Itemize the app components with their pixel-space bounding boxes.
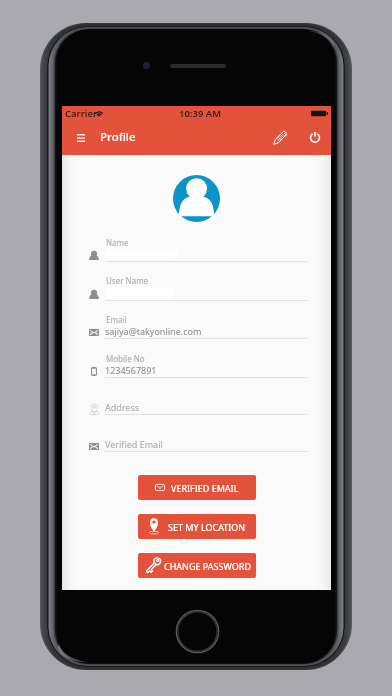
staticText: User Name (106, 275, 149, 286)
staticText: Carrier (65, 107, 98, 120)
button[interactable]: Log out (300, 122, 330, 152)
staticText: Email (106, 314, 127, 325)
staticText: Name (106, 237, 129, 248)
staticText: Verified Email (105, 438, 163, 450)
staticText: sajiya@takyonline.com (105, 325, 202, 337)
button[interactable]: Menu (67, 124, 94, 151)
staticText: Mobile No (106, 353, 145, 364)
button[interactable]: SET MY LOCATION (138, 514, 256, 539)
staticText: Address (105, 401, 140, 413)
staticText: VERIFIED EMAIL (171, 482, 239, 494)
staticText: 1234567891 (105, 364, 157, 376)
button[interactable]: VERIFIED EMAIL (138, 475, 256, 500)
staticText: 10:39 AM (179, 107, 222, 120)
staticText: Profile (100, 129, 136, 145)
button[interactable]: CHANGE PASSWORD (138, 553, 256, 578)
staticText: SET MY LOCATION (168, 521, 246, 533)
staticText: CHANGE PASSWORD (164, 560, 251, 572)
button[interactable]: Edit (265, 122, 295, 152)
